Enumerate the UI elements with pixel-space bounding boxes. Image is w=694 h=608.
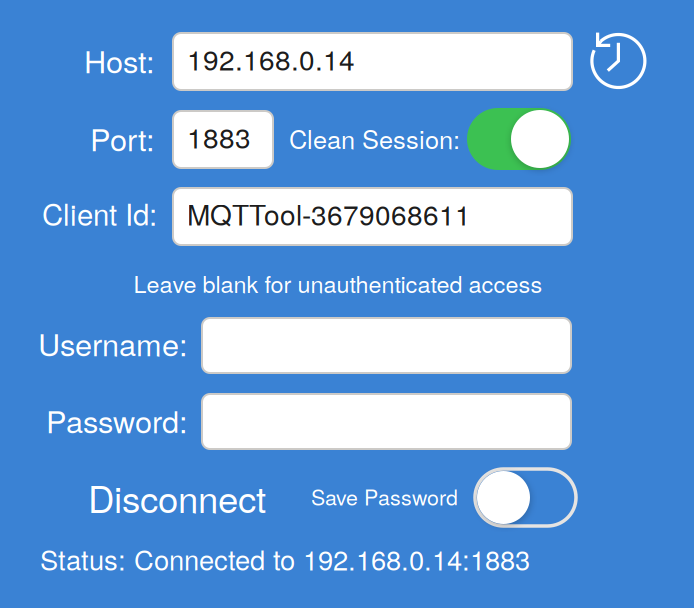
button[interactable]: Disconnect	[88, 471, 266, 523]
staticText: Status: Connected to 192.168.0.14:1883	[40, 539, 530, 578]
button[interactable]: Save Password	[475, 469, 576, 526]
staticText: Save Password	[311, 481, 458, 511]
staticText: Password:	[46, 398, 188, 442]
button[interactable]: Connection history	[585, 26, 655, 96]
button[interactable]	[202, 318, 571, 373]
staticText: 1883	[187, 116, 251, 157]
staticText: Username:	[38, 321, 188, 365]
staticText: 192.168.0.14	[187, 38, 355, 79]
button[interactable]	[202, 394, 571, 449]
button[interactable]: Clean Session	[467, 108, 571, 170]
staticText: Port:	[90, 116, 155, 160]
staticText: Clean Session:	[289, 120, 460, 156]
staticText: Leave blank for unauthenticated access	[133, 266, 542, 300]
button[interactable]: 1883	[173, 111, 273, 168]
button[interactable]: MQTTool-3679068611	[173, 188, 572, 245]
staticText: Host:	[84, 38, 155, 82]
staticText: Disconnect	[88, 471, 266, 523]
staticText: MQTTool-3679068611	[187, 193, 471, 234]
button[interactable]: 192.168.0.14	[173, 33, 572, 90]
staticText: Client Id:	[42, 192, 157, 234]
